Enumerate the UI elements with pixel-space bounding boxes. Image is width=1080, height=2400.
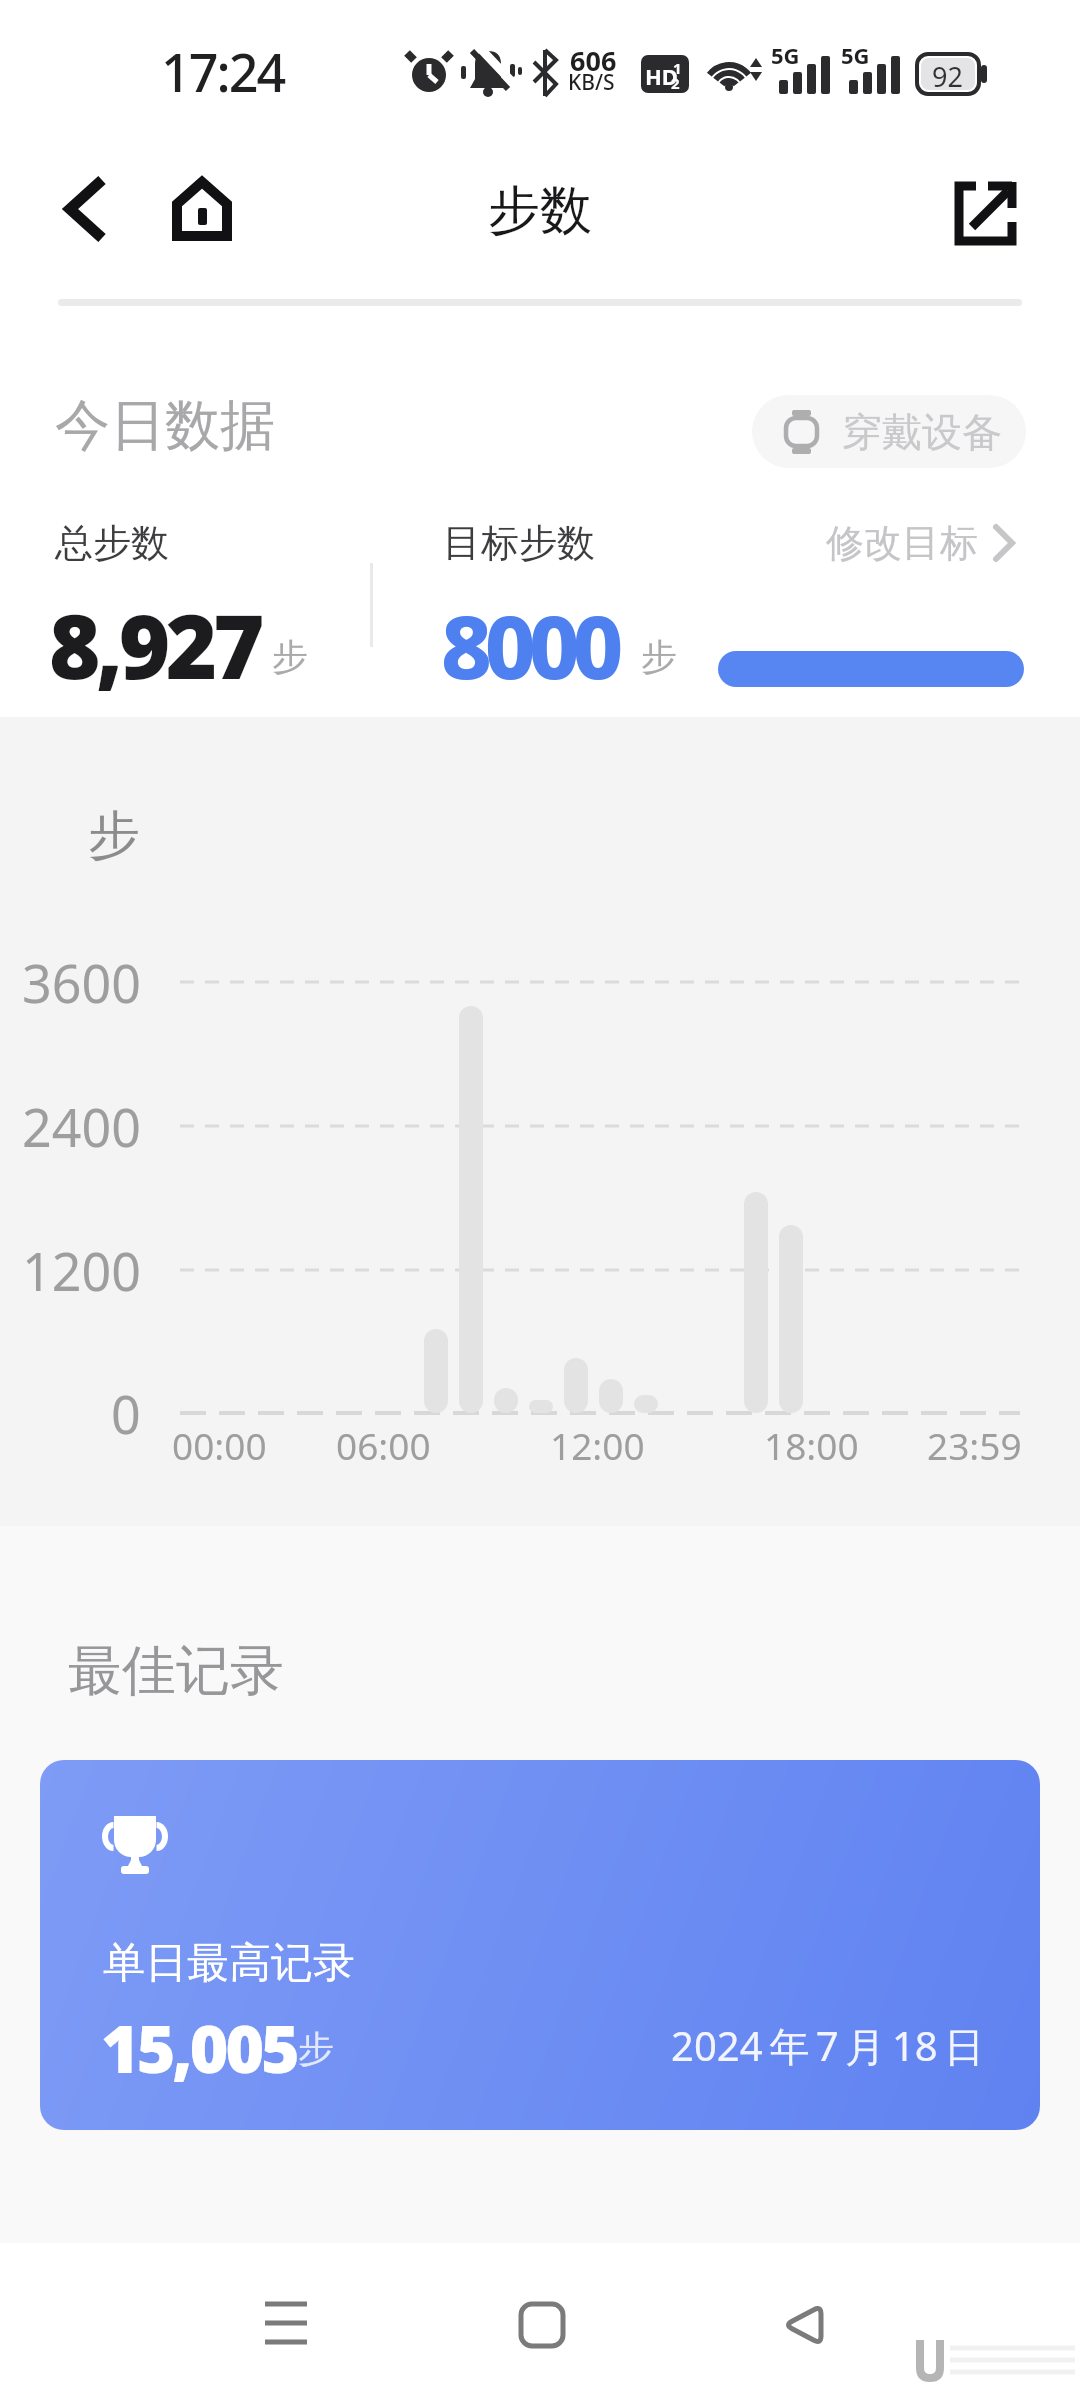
- staticText: 今日数据: [55, 391, 275, 460]
- staticText: 8000: [441, 585, 617, 705]
- staticText: 00:00: [172, 1420, 267, 1470]
- button[interactable]: [48, 168, 128, 252]
- button[interactable]: [940, 170, 1026, 254]
- button[interactable]: [496, 2280, 588, 2370]
- staticText: 步: [641, 634, 677, 679]
- staticText: 最佳记录: [68, 1637, 284, 1705]
- staticText: 步: [272, 634, 308, 679]
- staticText: 步: [298, 2026, 334, 2071]
- staticText: 2024 年 7 月 18 日: [671, 2018, 985, 2073]
- staticText: 单日最高记录: [103, 1937, 355, 1990]
- button[interactable]: [758, 2280, 850, 2370]
- staticText: 23:59: [927, 1420, 1022, 1470]
- staticText: 12:00: [550, 1420, 645, 1470]
- staticText: 17:24: [161, 36, 285, 107]
- staticText: 92: [932, 58, 963, 95]
- button[interactable]: 单日最高记录: [40, 1760, 1040, 2130]
- staticText: 8,927: [49, 585, 260, 705]
- staticText: 穿戴设备: [842, 407, 1002, 457]
- staticText: 3600: [22, 947, 141, 1017]
- staticText: 1200: [22, 1235, 141, 1305]
- staticText: 步: [88, 803, 140, 869]
- staticText: HD: [645, 61, 678, 91]
- staticText: 1: [673, 58, 682, 78]
- staticText: 18:00: [764, 1420, 859, 1470]
- staticText: 步数: [488, 178, 592, 244]
- staticText: 06:00: [336, 1420, 431, 1470]
- staticText: 5G: [771, 40, 800, 70]
- staticText: 2: [671, 73, 680, 93]
- button[interactable]: [240, 2280, 332, 2370]
- button[interactable]: [165, 170, 239, 246]
- staticText: 2400: [22, 1091, 141, 1161]
- staticText: 修改目标: [826, 519, 978, 567]
- staticText: 606: [570, 42, 617, 79]
- button[interactable]: 修改目标: [826, 519, 1014, 567]
- staticText: 15,005: [101, 2002, 297, 2092]
- staticText: 目标步数: [443, 519, 595, 567]
- staticText: 0: [111, 1378, 141, 1448]
- staticText: 总步数: [55, 519, 169, 567]
- staticText: KB/S: [568, 68, 615, 97]
- staticText: 5G: [841, 40, 870, 70]
- button[interactable]: 穿戴设备: [752, 395, 1026, 468]
